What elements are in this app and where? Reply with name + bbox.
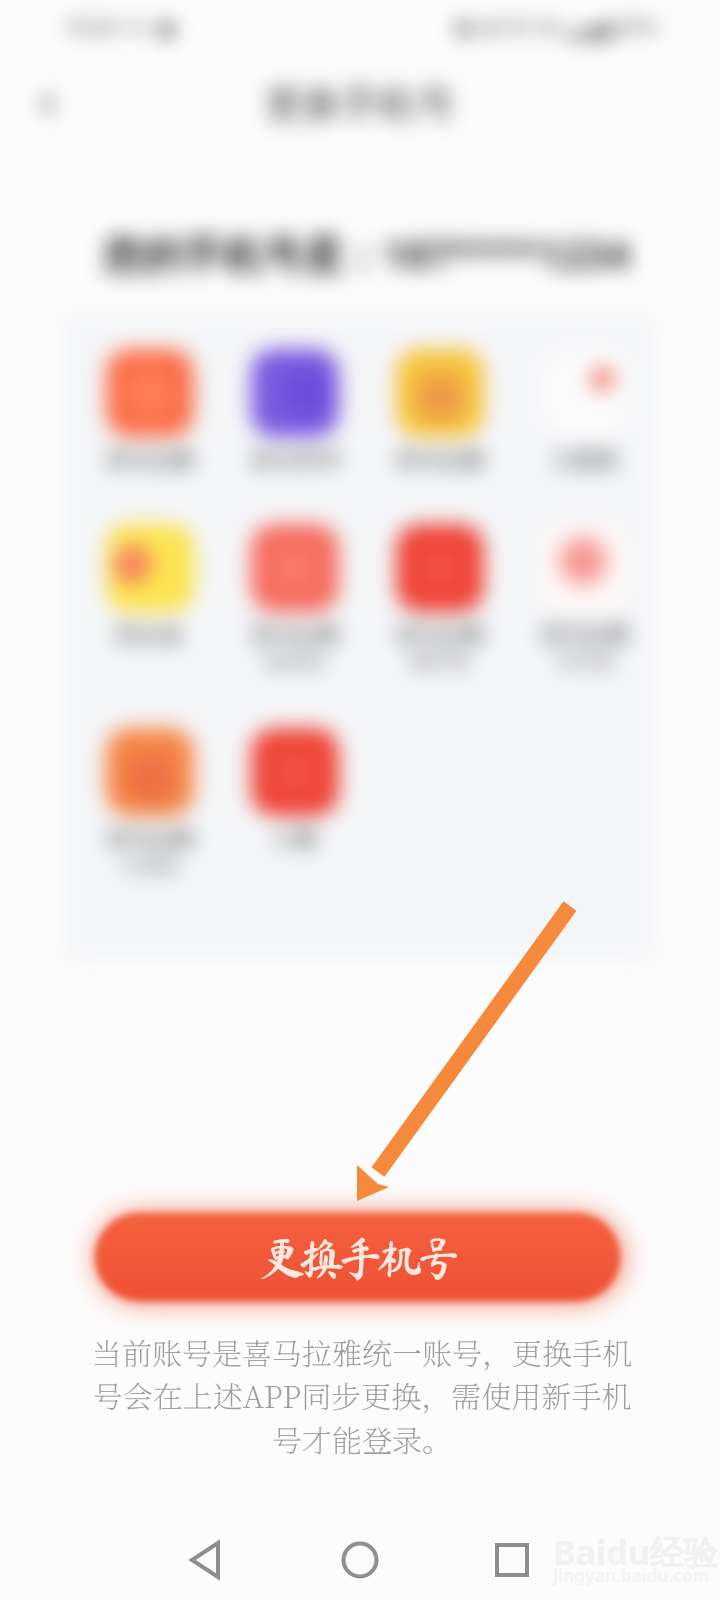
button[interactable]: Back	[180, 1532, 236, 1588]
button[interactable]: 喜马拉雅	[78, 349, 222, 474]
button[interactable]: 喜马拉雅	[223, 524, 367, 674]
staticText: 极速版	[265, 649, 325, 674]
staticText: 喜马拉雅	[251, 621, 339, 649]
staticText: 车机版	[555, 649, 615, 674]
button[interactable]: 喜马讲书	[223, 349, 367, 474]
button[interactable]: 小雅	[223, 728, 367, 853]
button[interactable]: 更换手机号	[95, 1213, 620, 1301]
button[interactable]: Recents	[484, 1532, 540, 1588]
staticText: 您的手机号是：187****1234	[103, 226, 630, 281]
staticText: 儿童版	[552, 446, 618, 474]
staticText: 当前账号是喜马拉雅统一账号，更换手机 号会在上述APP同步更换，需使用新手机 号…	[90, 1330, 634, 1461]
staticText: 喜马拉雅	[396, 621, 484, 649]
staticText: 喜马拉雅	[541, 621, 629, 649]
staticText: ● ◑ HD 4G ▂▃▅ 89%	[455, 13, 658, 40]
button[interactable]: Home	[332, 1532, 388, 1588]
staticText: 畅听版	[410, 649, 470, 674]
button[interactable]: 听头条	[78, 524, 222, 649]
staticText: 主播版	[120, 853, 180, 878]
button[interactable]: 喜马拉雅	[513, 524, 655, 674]
staticText: Baidu经验	[553, 1529, 718, 1575]
button[interactable]: 喜马拉雅	[78, 728, 222, 878]
staticText: 听头条	[117, 621, 183, 649]
staticText: 小雅	[273, 825, 317, 853]
staticText: 更换手机号	[260, 1235, 456, 1280]
staticText: 10:24 ✉ ●	[64, 13, 176, 42]
staticText: 喜马讲书	[251, 446, 339, 474]
staticText: 喜马拉雅	[396, 446, 484, 474]
staticText: 喜马拉雅	[106, 446, 194, 474]
button[interactable]: 喜马拉雅	[368, 349, 512, 474]
button[interactable]: Back	[26, 82, 70, 126]
staticText: jingyan.baidu.com	[553, 1564, 710, 1587]
button[interactable]: 儿童版	[513, 349, 655, 474]
staticText: 更换手机号	[0, 80, 720, 128]
button[interactable]: 喜马拉雅	[368, 524, 512, 674]
staticText: 喜马拉雅	[106, 825, 194, 853]
